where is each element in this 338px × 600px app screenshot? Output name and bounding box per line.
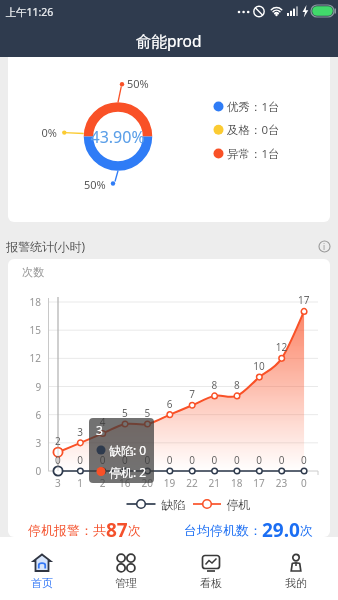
button[interactable]: 看板 xyxy=(168,537,253,600)
staticText: 次 xyxy=(128,522,141,538)
staticText: 我的 xyxy=(285,576,307,590)
staticText: 台均停机数： xyxy=(184,522,262,538)
button[interactable]: 首页 xyxy=(0,537,84,600)
staticText: 首页 xyxy=(31,576,53,590)
staticText: 87 xyxy=(106,517,128,543)
staticText: 看板 xyxy=(200,576,222,590)
staticText: 次 xyxy=(300,522,313,538)
button[interactable]: 管理 xyxy=(84,537,168,600)
button[interactable] xyxy=(314,236,336,258)
staticText: 管理 xyxy=(115,576,137,590)
staticText: 停机报警：共 xyxy=(28,522,106,538)
button[interactable]: 我的 xyxy=(253,537,338,600)
staticText: 29.0 xyxy=(262,517,300,543)
